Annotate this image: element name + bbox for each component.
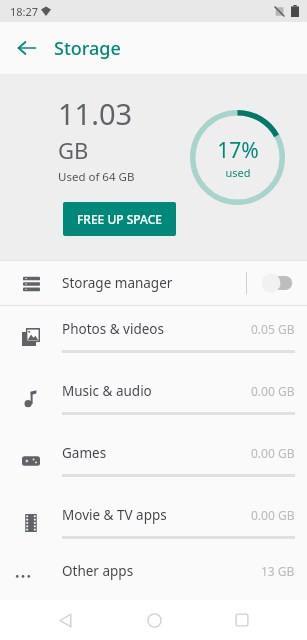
- staticText: Storage manager: [62, 274, 246, 292]
- staticText: FREE UP SPACE: [77, 211, 162, 227]
- staticText: used: [225, 165, 251, 180]
- staticText: Music & audio: [62, 382, 251, 400]
- staticText: 13 GB: [261, 563, 295, 579]
- staticText: Other apps: [62, 562, 261, 580]
- button[interactable]: Back: [6, 27, 48, 69]
- staticText: 0.00 GB: [251, 383, 295, 399]
- staticText: Photos & videos: [62, 320, 251, 338]
- staticText: 0.05 GB: [251, 321, 295, 337]
- button[interactable]: Home: [130, 600, 178, 640]
- button[interactable]: Movie & TV apps: [0, 492, 307, 554]
- button[interactable]: Other apps: [0, 554, 307, 584]
- staticText: Used of 64 GB: [58, 169, 135, 185]
- staticText: GB: [58, 135, 89, 165]
- staticText: 17%: [217, 136, 259, 165]
- button[interactable]: Back: [41, 600, 89, 640]
- button[interactable]: Storage manager toggle: [261, 273, 295, 293]
- staticText: 18:27: [10, 4, 39, 19]
- button[interactable]: FREE UP SPACE: [63, 202, 176, 236]
- button[interactable]: Recent apps: [218, 600, 266, 640]
- staticText: Games: [62, 444, 251, 462]
- button[interactable]: Storage manager: [0, 261, 307, 305]
- staticText: Storage: [54, 36, 121, 61]
- button[interactable]: Photos & videos: [0, 306, 307, 368]
- staticText: Movie & TV apps: [62, 506, 251, 524]
- button[interactable]: Music & audio: [0, 368, 307, 430]
- button[interactable]: Games: [0, 430, 307, 492]
- staticText: 0.00 GB: [251, 507, 295, 523]
- staticText: 11.03: [58, 94, 133, 133]
- staticText: 0.00 GB: [251, 445, 295, 461]
